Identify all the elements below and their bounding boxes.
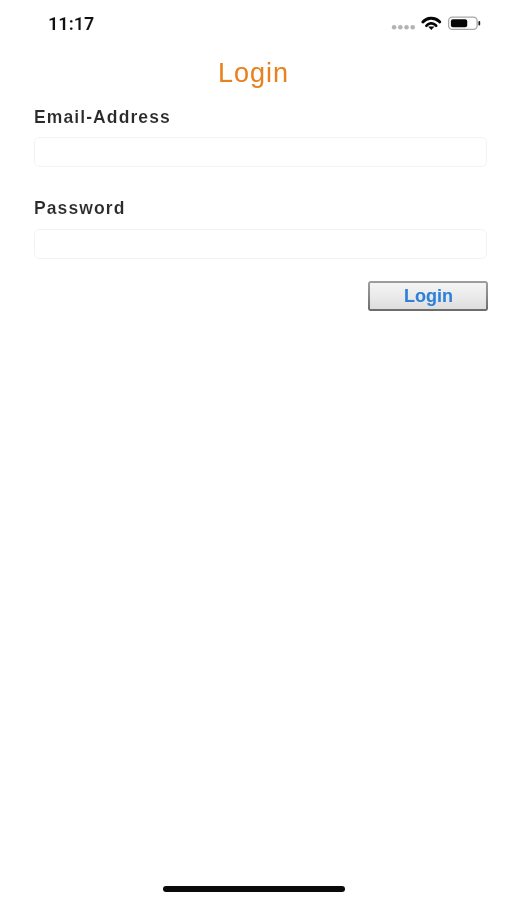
- other: Battery: [447, 15, 483, 32]
- button[interactable]: Email address input: [34, 137, 487, 167]
- button[interactable]: Login: [368, 281, 488, 311]
- staticText: Password: [34, 198, 126, 218]
- button[interactable]: Password input: [34, 229, 487, 259]
- other: Wi-Fi: [421, 15, 442, 30]
- other: Cellular signal: [390, 22, 416, 33]
- staticText: 11:17: [48, 13, 95, 34]
- staticText: Login: [404, 286, 453, 306]
- staticText: Login: [0, 58, 507, 88]
- staticText: Email-Address: [34, 107, 171, 127]
